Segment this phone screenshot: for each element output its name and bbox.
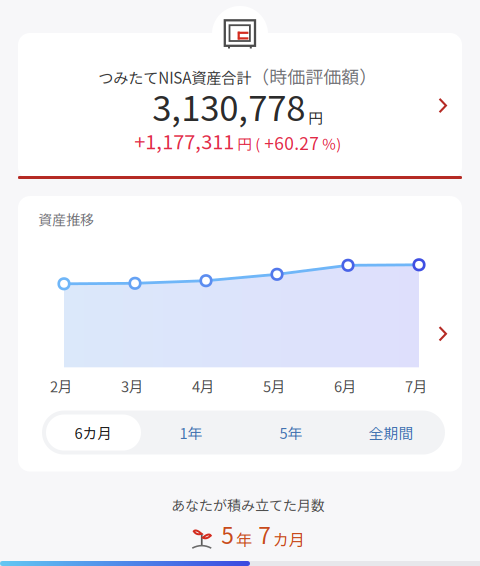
staticText: 全期間 — [368, 422, 413, 443]
staticText: ( — [252, 133, 260, 154]
staticText: %) — [319, 133, 341, 154]
staticText: （時価評価額） — [251, 63, 377, 89]
staticText: 6月 — [334, 375, 357, 396]
button[interactable]: 5年 — [241, 414, 341, 450]
staticText: 7月 — [405, 375, 428, 396]
staticText: 5月 — [263, 375, 286, 396]
staticText: 年 — [236, 527, 252, 551]
staticText: 3月 — [121, 375, 144, 396]
staticText: 円 — [234, 133, 252, 154]
staticText: 2月 — [50, 375, 73, 396]
staticText: 3,130,778 — [152, 81, 305, 131]
staticText: 4月 — [192, 375, 215, 396]
staticText: あなたが積み立てた月数 — [171, 494, 325, 515]
staticText: カ月 — [273, 527, 305, 551]
staticText: 5 — [221, 518, 234, 551]
staticText: +60.27 — [260, 130, 319, 155]
staticText: 円 — [308, 107, 323, 128]
button[interactable]: つみたてNISA資産合計 — [18, 33, 462, 179]
button[interactable]: 6カ月 — [46, 414, 141, 450]
staticText: +1,177,311 — [134, 126, 234, 155]
staticText: 5年 — [279, 422, 302, 443]
staticText: 7 — [253, 518, 271, 551]
staticText: 資産推移 — [38, 209, 94, 229]
button[interactable]: 全期間 — [341, 414, 441, 450]
button[interactable]: 1年 — [141, 414, 241, 450]
staticText: 1年 — [179, 422, 202, 443]
staticText: つみたてNISA資産合計 — [98, 66, 251, 88]
button[interactable]: 資産推移の詳細 — [438, 196, 462, 341]
staticText: 6カ月 — [74, 422, 112, 443]
